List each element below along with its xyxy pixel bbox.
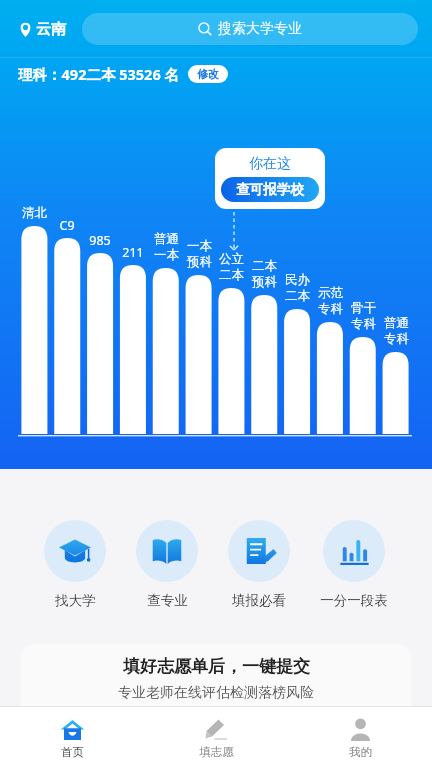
- button[interactable]: 查可报学校: [221, 177, 319, 202]
- button[interactable]: 搜索大学专业: [82, 13, 418, 45]
- staticText: 云南: [36, 20, 66, 39]
- button[interactable]: 云南: [14, 16, 70, 43]
- staticText: 玩意下载 · NEWYXH.COM.CN: [60, 736, 317, 762]
- button[interactable]: 填报必看: [228, 518, 290, 611]
- staticText: 我的: [349, 745, 372, 759]
- button[interactable]: 理科：492二本 53526 名: [18, 64, 228, 84]
- staticText: 填报必看: [232, 592, 286, 609]
- button[interactable]: 我的: [288, 707, 432, 768]
- staticText: 二本: [219, 267, 244, 283]
- staticText: 预科: [252, 274, 277, 290]
- staticText: 示范: [318, 285, 343, 301]
- staticText: 公立: [219, 251, 244, 267]
- staticText: 二本: [285, 288, 310, 304]
- staticText: 985: [89, 232, 111, 249]
- staticText: 211: [122, 244, 144, 261]
- staticText: 查专业: [147, 592, 188, 609]
- button[interactable]: 查专业: [136, 518, 198, 611]
- staticText: 二本: [252, 258, 277, 274]
- staticText: 填好志愿单后，一键提交: [123, 656, 310, 677]
- staticText: 首页: [61, 745, 84, 759]
- staticText: 普通: [154, 231, 179, 247]
- staticText: 修改: [197, 67, 219, 81]
- button[interactable]: 一分一段表: [320, 518, 388, 611]
- staticText: 预科: [187, 254, 212, 270]
- staticText: 专科: [318, 301, 343, 317]
- staticText: 找大学: [55, 592, 96, 609]
- staticText: 填志愿: [199, 745, 234, 759]
- staticText: 一本: [154, 247, 179, 263]
- staticText: C9: [59, 217, 75, 234]
- staticText: 你在这: [249, 155, 291, 173]
- button[interactable]: 填志愿: [144, 707, 288, 768]
- staticText: 理科：492二本 53526 名: [18, 64, 179, 84]
- button[interactable]: 首页: [0, 707, 144, 768]
- staticText: 民办: [285, 272, 310, 288]
- button[interactable]: 找大学: [44, 518, 106, 611]
- button[interactable]: 修改: [188, 65, 228, 83]
- button[interactable]: 你在这: [215, 148, 325, 209]
- staticText: 专科: [384, 331, 409, 347]
- staticText: 搜索大学专业: [218, 20, 302, 38]
- staticText: 骨干: [351, 300, 376, 316]
- staticText: 一分一段表: [320, 592, 388, 609]
- button[interactable]: 填好志愿单后，一键提交: [21, 644, 411, 724]
- staticText: 查可报学校: [236, 181, 304, 198]
- staticText: 专科: [351, 316, 376, 332]
- staticText: 专业老师在线评估检测落榜风险: [118, 684, 314, 702]
- staticText: 普通: [384, 315, 409, 331]
- staticText: 清北: [22, 205, 47, 221]
- staticText: 一本: [187, 238, 212, 254]
